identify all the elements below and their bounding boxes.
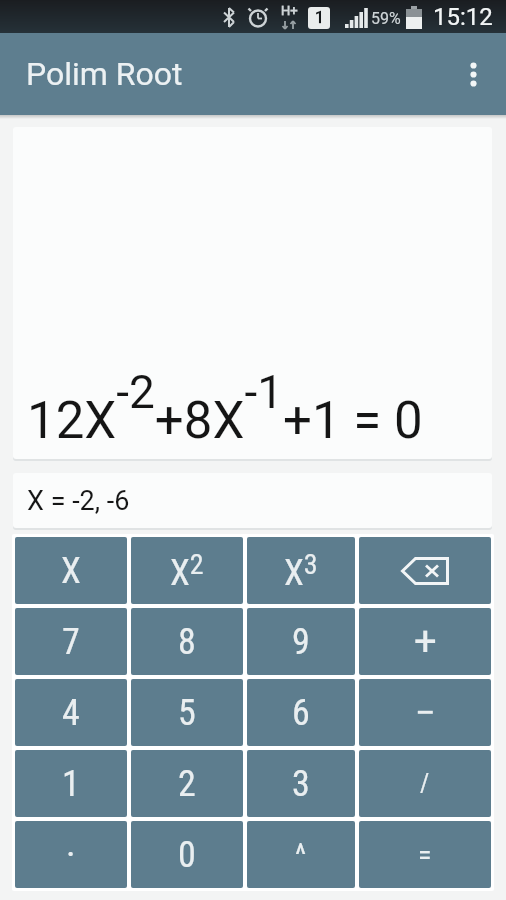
staticText: 4	[62, 692, 80, 734]
button[interactable]: ^	[247, 821, 355, 888]
staticText: ^	[295, 837, 307, 872]
button[interactable]: 6	[247, 679, 355, 746]
button[interactable]: 7	[15, 608, 127, 675]
button[interactable]: 1	[15, 750, 127, 817]
button[interactable]: X2	[131, 537, 243, 604]
button[interactable]: −	[359, 679, 491, 746]
staticText: X3	[284, 548, 318, 594]
staticText: X2	[170, 548, 204, 594]
staticText: 6	[292, 692, 310, 734]
staticText: H+	[281, 3, 298, 18]
button[interactable]: ·	[15, 821, 127, 888]
button[interactable]	[442, 33, 506, 115]
button[interactable]: 0	[131, 821, 243, 888]
button[interactable]: 9	[247, 608, 355, 675]
button[interactable]: 12X-2+8X-1+1 = 0	[13, 127, 492, 459]
staticText: Polim Root	[26, 55, 183, 93]
staticText: +	[414, 618, 437, 665]
staticText: 9	[292, 621, 310, 663]
staticText: 8	[178, 621, 196, 663]
staticText: ·	[66, 834, 76, 876]
staticText: 1	[315, 8, 324, 27]
button[interactable]: 5	[131, 679, 243, 746]
staticText: −	[415, 692, 436, 734]
staticText: 1	[62, 763, 80, 805]
staticText: 0	[178, 834, 196, 876]
button[interactable]: =	[359, 821, 491, 888]
button[interactable]: 3	[247, 750, 355, 817]
staticText: X	[61, 550, 81, 592]
staticText: 3	[292, 763, 310, 805]
button[interactable]: X3	[247, 537, 355, 604]
staticText: 7	[62, 621, 80, 663]
button[interactable]: 4	[15, 679, 127, 746]
staticText: 12X-2+8X-1+1 = 0	[27, 365, 423, 450]
staticText: 59%	[371, 9, 401, 28]
button[interactable]: X	[15, 537, 127, 604]
staticText: /	[420, 769, 430, 798]
button[interactable]: +	[359, 608, 491, 675]
staticText: 2	[178, 763, 196, 805]
button[interactable]: 2	[131, 750, 243, 817]
staticText: 15:12	[433, 3, 493, 31]
button[interactable]: 8	[131, 608, 243, 675]
staticText: X = -2, -6	[27, 485, 130, 517]
staticText: 5	[178, 692, 196, 734]
button[interactable]: /	[359, 750, 491, 817]
button[interactable]	[359, 537, 491, 604]
staticText: =	[418, 838, 432, 871]
button[interactable]: X = -2, -6	[13, 473, 492, 528]
